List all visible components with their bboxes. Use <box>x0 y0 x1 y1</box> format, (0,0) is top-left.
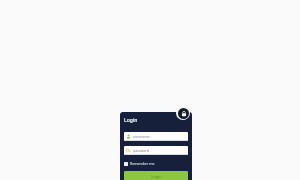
staticText: Remember me <box>130 161 155 166</box>
button[interactable]: password <box>124 146 188 155</box>
button[interactable]: Login <box>124 171 188 180</box>
button[interactable]: Secure login <box>178 108 189 119</box>
staticText: username <box>133 134 150 139</box>
staticText: Login <box>151 174 162 179</box>
staticText: Login <box>124 117 138 124</box>
button[interactable]: Remember me <box>124 160 155 167</box>
staticText: password <box>133 148 149 153</box>
button[interactable]: username <box>124 132 188 141</box>
